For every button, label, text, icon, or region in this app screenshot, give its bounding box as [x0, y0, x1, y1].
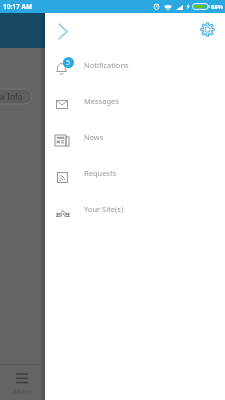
staticText: View Info [0, 91, 23, 102]
button[interactable]: View Info [0, 89, 32, 104]
button[interactable]: Your Site(s) [45, 192, 225, 228]
staticText: Your Site(s) [84, 204, 124, 214]
button[interactable]: Messages [45, 84, 225, 120]
staticText: More [13, 386, 32, 396]
staticText: Messages [84, 96, 119, 106]
button[interactable]: More [0, 365, 45, 400]
staticText: 88% [211, 3, 224, 11]
button[interactable]: Close drawer [51, 19, 75, 43]
staticText: Requests [84, 168, 117, 178]
button[interactable]: News [45, 120, 225, 156]
staticText: News [84, 132, 104, 142]
button[interactable]: 5 [45, 48, 225, 84]
button[interactable]: Settings [196, 18, 218, 40]
staticText: 5 [66, 58, 71, 68]
staticText: 10:17 AM [3, 2, 33, 11]
staticText: Notifications [84, 60, 129, 70]
button[interactable]: Requests [45, 156, 225, 192]
